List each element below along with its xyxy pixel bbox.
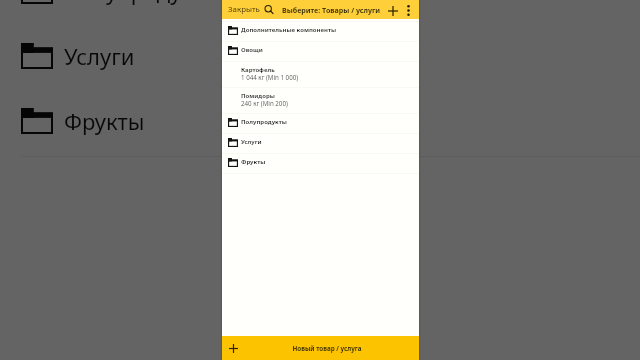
button[interactable]: Поиск <box>264 0 275 19</box>
staticText: Фрукты <box>64 106 145 136</box>
staticText: Картофель <box>241 66 275 74</box>
staticText: Помидоры <box>241 92 275 100</box>
button[interactable]: Полупродукты <box>0 0 640 23</box>
staticText: Услуги <box>64 41 135 71</box>
button[interactable]: Дополнительные компоненты <box>222 21 419 41</box>
staticText: Фрукты <box>241 158 266 166</box>
button[interactable]: Полупродукты <box>222 113 419 133</box>
staticText: 1 044 кг (Min 1 000) <box>241 73 299 81</box>
button[interactable]: Добавить <box>385 0 401 19</box>
staticText: Выберите: Товары / услуги <box>282 5 381 15</box>
button[interactable]: Овощи <box>222 41 419 61</box>
staticText: Полупродукты <box>64 0 221 6</box>
button[interactable]: Помидоры <box>222 87 419 113</box>
button[interactable]: Услуги <box>222 133 419 153</box>
button[interactable]: Фрукты <box>222 153 419 173</box>
button[interactable]: Новый товар / услуга <box>222 336 419 360</box>
staticText: Полупродукты <box>241 118 287 126</box>
staticText: Дополнительные компоненты <box>241 26 337 34</box>
button[interactable]: Услуги <box>0 23 640 88</box>
button[interactable]: Закрыть <box>222 0 264 19</box>
staticText: Овощи <box>241 46 263 54</box>
staticText: Новый товар / услуга <box>238 344 416 353</box>
staticText: Услуги <box>241 138 262 146</box>
staticText: Закрыть <box>228 4 260 15</box>
button[interactable]: Ещё <box>401 0 415 19</box>
staticText: 240 кг (Min 200) <box>241 99 288 107</box>
button[interactable]: Фрукты <box>0 88 640 153</box>
button[interactable]: Картофель <box>222 61 419 87</box>
